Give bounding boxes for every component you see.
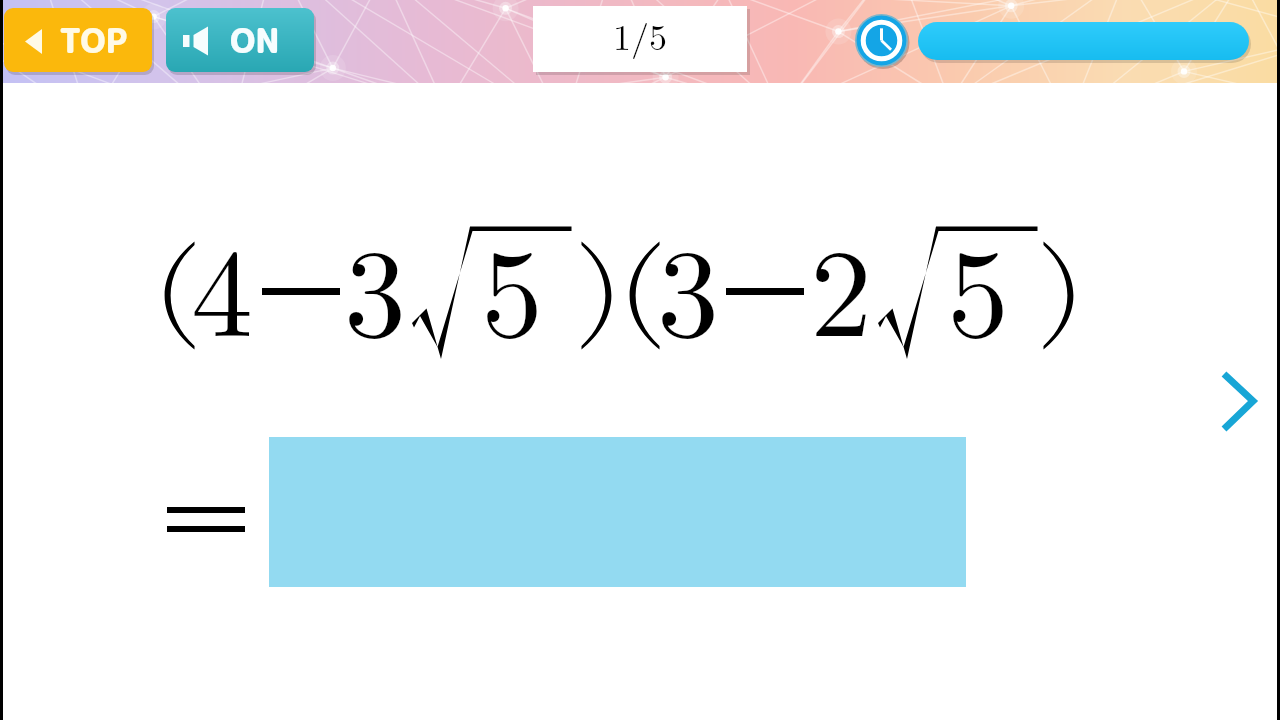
staticText: 5 xyxy=(481,196,544,372)
button[interactable]: 1/5 xyxy=(533,6,747,72)
button[interactable]: Next question xyxy=(1210,360,1268,432)
staticText: 1/5 xyxy=(613,9,667,60)
staticText: 2 xyxy=(810,196,873,372)
other: Timer xyxy=(855,14,908,67)
button[interactable]: TOP xyxy=(4,8,152,72)
staticText: TOP xyxy=(59,16,128,63)
button[interactable] xyxy=(918,22,1249,60)
staticText: ON xyxy=(230,16,280,63)
staticText: 5 xyxy=(947,196,1010,372)
staticText: 3 xyxy=(657,196,720,372)
button[interactable]: ON xyxy=(166,8,314,72)
staticText: 3 xyxy=(344,196,407,372)
staticText: 4 xyxy=(191,196,254,372)
